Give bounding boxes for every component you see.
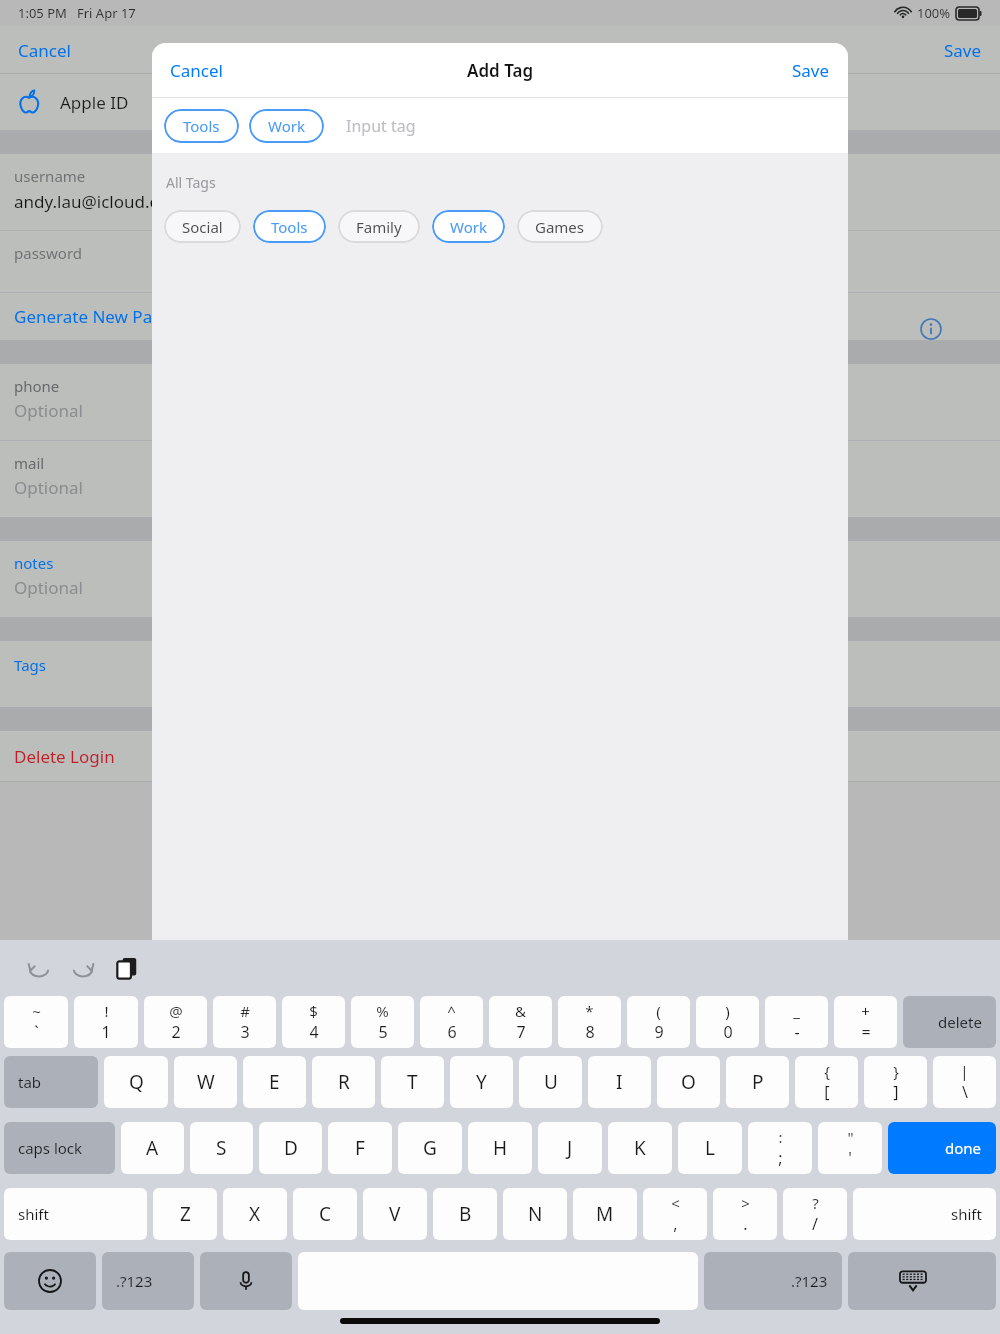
button[interactable]: Q [104, 1056, 168, 1108]
button[interactable]: shift [4, 1188, 147, 1240]
button[interactable]: Generate New Password [0, 293, 1000, 340]
button[interactable]: * [558, 996, 621, 1048]
button[interactable]: Undo [22, 951, 56, 985]
button[interactable]: Social [164, 210, 241, 243]
staticText: ^ [447, 1001, 456, 1021]
button[interactable]: @ [144, 996, 207, 1048]
button[interactable]: % [351, 996, 414, 1048]
staticText: 7 [516, 1021, 526, 1043]
button[interactable]: C [293, 1188, 357, 1240]
button[interactable]: V [363, 1188, 427, 1240]
button[interactable]: < [643, 1188, 707, 1240]
button[interactable]: B [433, 1188, 497, 1240]
button[interactable]: ( [627, 996, 690, 1048]
button[interactable]: ! [74, 996, 138, 1048]
button[interactable]: Paste [110, 951, 144, 985]
button[interactable]: Emoji [4, 1252, 96, 1310]
staticText: P [752, 1069, 764, 1095]
staticText: 6 [447, 1021, 457, 1043]
button[interactable]: caps lock [4, 1122, 115, 1174]
button[interactable]: Z [153, 1188, 217, 1240]
staticText: \ [962, 1081, 968, 1103]
button[interactable]: H [468, 1122, 532, 1174]
staticText: B [459, 1201, 472, 1227]
staticText: Work [268, 116, 305, 136]
staticText: ) [725, 1001, 730, 1021]
button[interactable]: | [933, 1056, 996, 1108]
button[interactable]: J [538, 1122, 602, 1174]
staticText: 4 [309, 1021, 319, 1043]
button[interactable]: done [888, 1122, 996, 1174]
button[interactable]: Cancel [152, 49, 241, 92]
button[interactable]: N [503, 1188, 567, 1240]
button[interactable]: Work [432, 210, 505, 243]
staticText: Fri Apr 17 [77, 4, 136, 22]
button[interactable]: K [608, 1122, 672, 1174]
button[interactable]: ~ [4, 996, 68, 1048]
button[interactable]: delete [903, 996, 996, 1048]
button[interactable]: & [489, 996, 552, 1048]
button[interactable]: Cancel [0, 31, 89, 70]
button[interactable]: U [519, 1056, 582, 1108]
button[interactable]: Save [926, 31, 1000, 70]
staticText: Cancel [18, 39, 71, 62]
staticText: notes [14, 553, 54, 573]
button[interactable]: { [795, 1056, 858, 1108]
button[interactable]: .?123 [704, 1252, 842, 1310]
button[interactable]: F [328, 1122, 392, 1174]
staticText: I [616, 1069, 623, 1095]
staticText: - [794, 1021, 800, 1043]
button[interactable]: } [864, 1056, 927, 1108]
staticText: [ [824, 1081, 830, 1103]
button[interactable]: Delete Login [0, 731, 1000, 781]
button[interactable]: R [312, 1056, 375, 1108]
button[interactable]: + [834, 996, 897, 1048]
button[interactable]: Password information [914, 312, 948, 346]
button[interactable]: Work [249, 109, 324, 143]
button[interactable]: Dictation [200, 1252, 292, 1310]
staticText: Q [129, 1069, 144, 1095]
button[interactable]: ? [783, 1188, 847, 1240]
button[interactable]: : [748, 1122, 812, 1174]
button[interactable]: ) [696, 996, 759, 1048]
button[interactable]: A [121, 1122, 184, 1174]
button[interactable]: Save [774, 49, 848, 92]
button[interactable]: shift [853, 1188, 996, 1240]
button[interactable]: S [190, 1122, 253, 1174]
button[interactable]: # [213, 996, 276, 1048]
button[interactable]: I [588, 1056, 651, 1108]
button[interactable]: Family [338, 210, 420, 243]
button[interactable]: O [657, 1056, 720, 1108]
button[interactable]: Redo [66, 951, 100, 985]
staticText: > [741, 1193, 750, 1213]
button[interactable]: Games [517, 210, 603, 243]
staticText: H [493, 1135, 508, 1161]
button[interactable]: tab [4, 1056, 98, 1108]
button[interactable]: W [174, 1056, 237, 1108]
staticText: phone [14, 376, 60, 396]
button[interactable]: L [678, 1122, 742, 1174]
button[interactable]: " [818, 1122, 882, 1174]
button[interactable]: E [243, 1056, 306, 1108]
button[interactable]: T [381, 1056, 444, 1108]
button[interactable]: M [573, 1188, 637, 1240]
button[interactable]: Y [450, 1056, 513, 1108]
button[interactable]: ^ [420, 996, 483, 1048]
button[interactable]: $ [282, 996, 345, 1048]
button[interactable]: Tools [253, 210, 326, 243]
button[interactable]: G [398, 1122, 462, 1174]
staticText: 3 [240, 1021, 250, 1043]
button[interactable]: P [726, 1056, 789, 1108]
button[interactable]: > [713, 1188, 777, 1240]
button[interactable]: Tools [164, 109, 239, 143]
staticText: S [216, 1135, 227, 1161]
staticText: Save [792, 59, 830, 82]
button[interactable]: Tags [0, 641, 1000, 707]
button[interactable]: _ [765, 996, 828, 1048]
button[interactable]: D [259, 1122, 322, 1174]
button[interactable]: X [223, 1188, 287, 1240]
staticText: Apple ID [60, 91, 129, 114]
button[interactable]: .?123 [102, 1252, 194, 1310]
button[interactable]: Hide keyboard [848, 1252, 996, 1310]
